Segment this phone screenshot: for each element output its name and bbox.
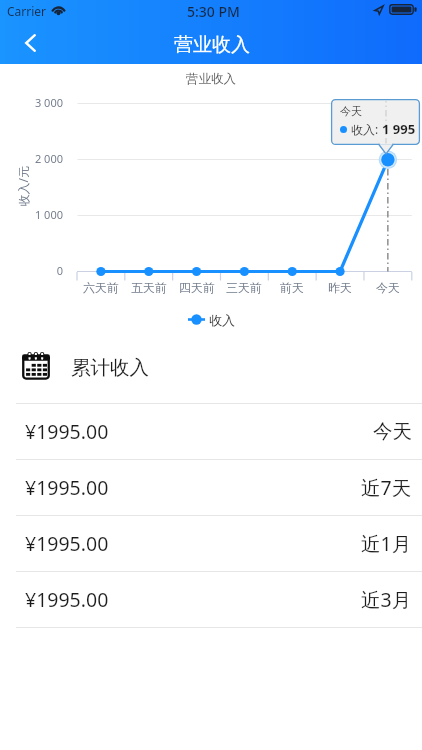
staticText: 三天前 [220,280,268,295]
button[interactable]: ¥1995.00 [0,404,422,459]
staticText: 六天前 [77,280,125,295]
staticText: 今天 [340,104,362,118]
staticText: 营业收入 [174,33,250,57]
staticText: 累计收入 [71,355,149,380]
staticText: 今天 [364,280,412,295]
staticText: 今天 [373,419,412,444]
staticText: 收入/元 [14,165,30,206]
staticText: 昨天 [316,280,364,295]
staticText: 营业收入 [186,71,236,87]
staticText: 收入 [209,312,235,328]
staticText: 0 [0,263,63,278]
staticText: 5:30 PM [187,2,240,21]
staticText: 五天前 [125,280,173,295]
staticText: 1 000 [0,207,63,222]
staticText: 四天前 [173,280,221,295]
staticText: 收入: [351,121,382,137]
button[interactable]: ¥1995.00 [0,460,422,515]
staticText: 1 995 [382,120,416,138]
staticText: 近3月 [361,586,412,613]
staticText: ¥1995.00 [25,530,109,557]
staticText: ¥1995.00 [25,474,109,501]
button[interactable]: Back [0,22,52,64]
staticText: 3 000 [0,95,63,110]
button[interactable]: ¥1995.00 [0,572,422,627]
staticText: 近7天 [361,474,412,501]
staticText: 近1月 [361,530,412,557]
staticText: ¥1995.00 [25,418,109,445]
staticText: ¥1995.00 [25,586,109,613]
staticText: 2 000 [0,151,63,166]
staticText: Carrier [7,3,47,19]
button[interactable]: ¥1995.00 [0,516,422,571]
staticText: 前天 [268,280,316,295]
